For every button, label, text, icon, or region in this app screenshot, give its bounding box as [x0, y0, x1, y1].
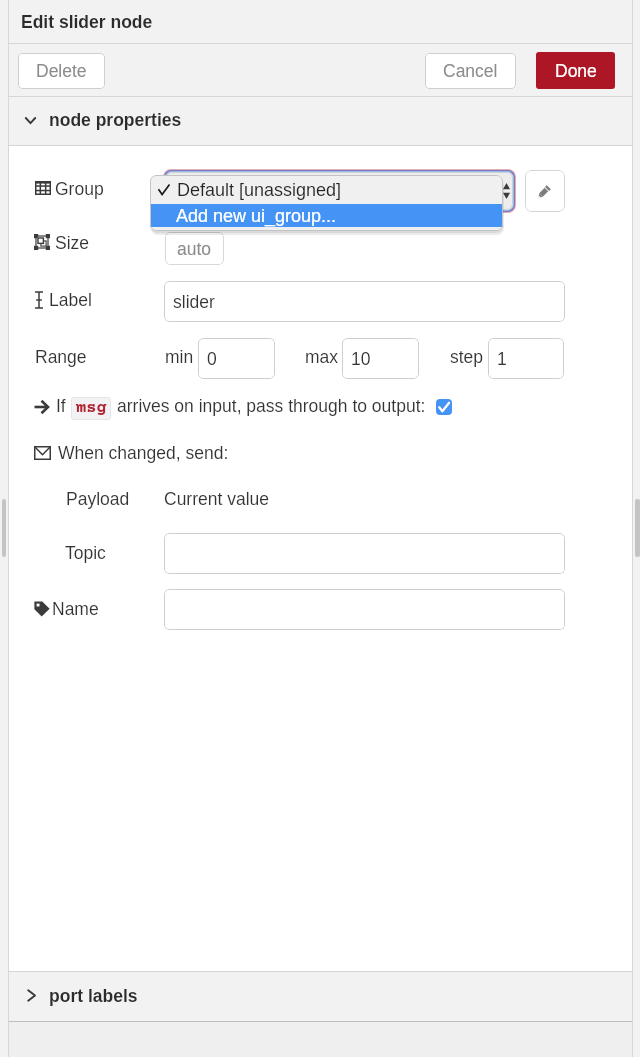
button[interactable]: 10 [342, 338, 419, 379]
staticText: When changed, send: [58, 443, 229, 463]
button[interactable] [163, 169, 516, 213]
staticText: Delete [36, 61, 87, 81]
staticText: Current value [164, 489, 270, 509]
staticText: port labels [49, 986, 138, 1006]
staticText: 1 [497, 349, 507, 369]
staticText: min [165, 347, 194, 367]
staticText: Cancel [443, 61, 498, 81]
button[interactable]: Pass through to output [436, 399, 452, 415]
staticText: Label [49, 290, 92, 310]
staticText: msg [76, 399, 107, 418]
staticText: Group [55, 179, 104, 199]
staticText: Size [55, 233, 90, 253]
staticText: max [305, 347, 339, 367]
staticText: slider [173, 292, 215, 312]
staticText: 10 [351, 349, 371, 369]
staticText: Payload [66, 489, 130, 509]
staticText: Name [52, 599, 99, 619]
staticText: Topic [65, 543, 106, 563]
button[interactable]: port labels [9, 972, 632, 1021]
button[interactable] [164, 533, 565, 574]
button[interactable]: Cancel [425, 53, 516, 89]
staticText: Range [35, 347, 87, 367]
button[interactable]: 1 [488, 338, 564, 379]
staticText: arrives on input, pass through to output… [117, 396, 426, 416]
button[interactable]: Add new ui_group... [150, 204, 503, 227]
staticText: If [56, 396, 66, 416]
button[interactable]: node properties [0, 97, 640, 145]
staticText: Done [555, 61, 597, 81]
button[interactable]: auto [165, 232, 224, 265]
button[interactable]: Delete [18, 53, 105, 89]
staticText: Edit slider node [21, 12, 153, 32]
staticText: Default [unassigned] [177, 180, 342, 200]
button[interactable]: Edit group [525, 170, 565, 212]
staticText: node properties [49, 110, 182, 130]
staticText: step [450, 347, 484, 367]
staticText: Add new ui_group... [176, 206, 337, 226]
staticText: 0 [207, 349, 217, 369]
staticText: auto [177, 239, 212, 259]
button[interactable]: slider [164, 281, 565, 322]
button[interactable]: Done [536, 52, 615, 89]
button[interactable]: 0 [198, 338, 275, 379]
button[interactable] [164, 589, 565, 630]
button[interactable]: Default [unassigned] [150, 175, 503, 204]
